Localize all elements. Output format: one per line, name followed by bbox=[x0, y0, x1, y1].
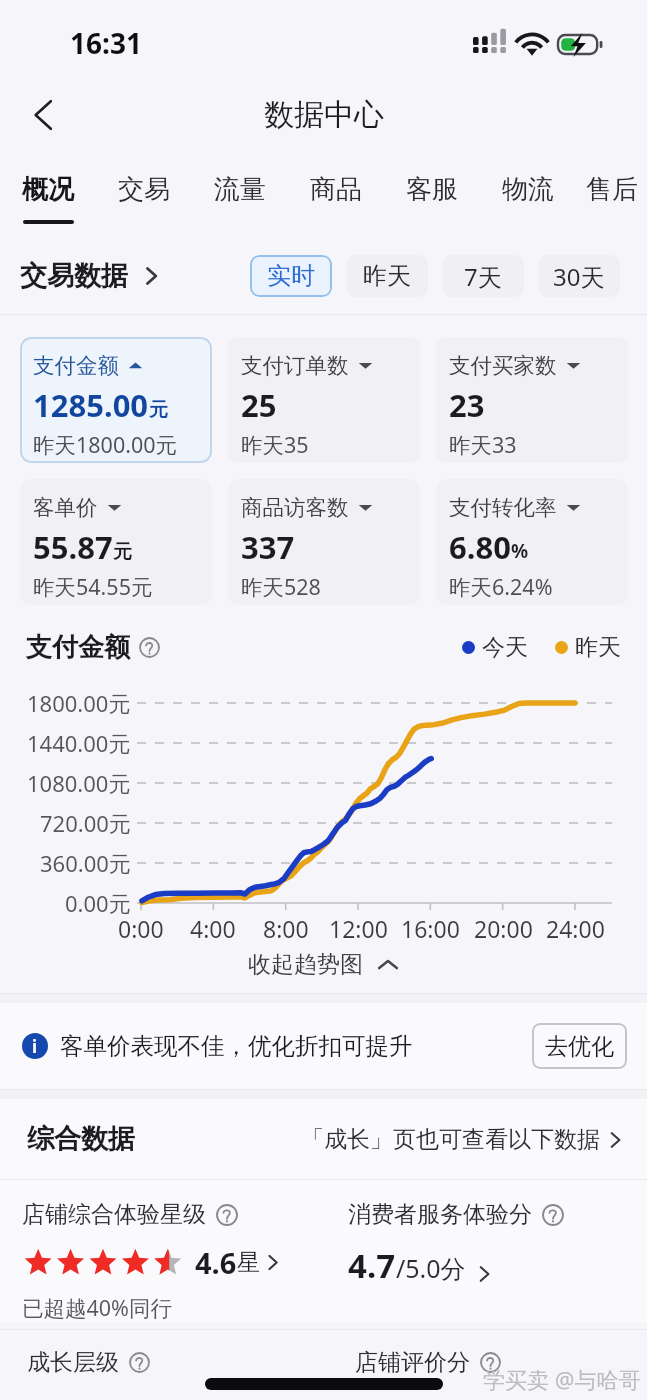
button[interactable]: 商品 bbox=[288, 144, 384, 226]
button[interactable]: 去优化 bbox=[532, 1023, 627, 1069]
button[interactable]: 收起趋势图 bbox=[248, 950, 399, 979]
staticText: 20:00 bbox=[474, 913, 533, 944]
staticText: 0.00元 bbox=[65, 888, 131, 918]
staticText: 昨天528 bbox=[241, 572, 321, 601]
button[interactable]: 7天 bbox=[442, 255, 524, 297]
staticText: 1440.00元 bbox=[27, 728, 131, 758]
staticText: 昨天1800.00元 bbox=[33, 430, 178, 459]
staticText: 720.00元 bbox=[40, 808, 131, 838]
staticText: 昨天 bbox=[575, 633, 621, 662]
staticText: 昨天6.24% bbox=[449, 572, 553, 601]
staticText: 昨天54.55元 bbox=[33, 572, 153, 601]
staticText: 商品访客数 bbox=[241, 494, 349, 521]
staticText: 流量 bbox=[214, 173, 266, 206]
button[interactable]: 客服 bbox=[384, 144, 480, 226]
staticText: 交易数据 bbox=[20, 259, 128, 293]
button[interactable]: 物流 bbox=[480, 144, 576, 226]
staticText: 综合数据 bbox=[27, 1122, 135, 1156]
staticText: 今天 bbox=[482, 633, 528, 662]
staticText: i bbox=[32, 1035, 38, 1058]
button[interactable]: 支付金额 bbox=[20, 337, 212, 463]
staticText: 4.6 bbox=[195, 1243, 237, 1282]
staticText: 客单价 bbox=[33, 494, 98, 521]
staticText: 1080.00元 bbox=[27, 768, 131, 798]
staticText: 店铺综合体验星级 bbox=[22, 1200, 206, 1229]
staticText: 支付买家数 bbox=[449, 352, 557, 379]
staticText: 店铺评价分 bbox=[355, 1348, 470, 1377]
button[interactable]: 实时 bbox=[250, 255, 332, 297]
button[interactable]: 交易数据 bbox=[20, 259, 162, 293]
staticText: 支付转化率 bbox=[449, 494, 557, 521]
staticText: 昨天35 bbox=[241, 430, 309, 459]
staticText: 支付金额 bbox=[26, 631, 130, 664]
staticText: 12:00 bbox=[329, 913, 388, 944]
staticText: 6.80 bbox=[449, 526, 511, 568]
staticText: 概况 bbox=[22, 173, 74, 206]
button[interactable]: 支付转化率 bbox=[436, 479, 628, 605]
button[interactable]: 售后 bbox=[576, 144, 647, 226]
staticText: 去优化 bbox=[545, 1032, 614, 1061]
staticText: 1800.00元 bbox=[27, 688, 131, 718]
staticText: 已超越40%同行 bbox=[22, 1293, 172, 1322]
button[interactable]: 概况 bbox=[0, 144, 96, 226]
staticText: 交易 bbox=[118, 173, 170, 206]
staticText: 成长层级 bbox=[27, 1348, 119, 1377]
staticText: 物流 bbox=[502, 173, 554, 206]
button[interactable]: 店铺综合体验星级 bbox=[0, 1200, 348, 1322]
staticText: 客单价表现不佳，优化折扣可提升 bbox=[60, 1031, 413, 1061]
button[interactable]: 交易 bbox=[96, 144, 192, 226]
staticText: 4:00 bbox=[190, 913, 236, 944]
staticText: 360.00元 bbox=[40, 848, 131, 878]
button[interactable]: 支付订单数 bbox=[228, 337, 420, 463]
staticText: 23 bbox=[449, 384, 485, 426]
staticText: 支付订单数 bbox=[241, 352, 349, 379]
staticText: 元 bbox=[149, 398, 168, 422]
staticText: 收起趋势图 bbox=[248, 950, 363, 979]
staticText: 学买卖 @与哈哥 bbox=[483, 1364, 641, 1394]
button[interactable]: 「成长」页也可查看以下数据 bbox=[301, 1125, 625, 1154]
staticText: 1285.00 bbox=[33, 384, 149, 426]
staticText: 元 bbox=[113, 540, 132, 564]
staticText: 0:00 bbox=[118, 913, 164, 944]
staticText: 昨天 bbox=[363, 261, 411, 291]
staticText: 星 bbox=[237, 1248, 260, 1277]
button[interactable]: 30天 bbox=[538, 255, 620, 297]
staticText: 昨天33 bbox=[449, 430, 517, 459]
staticText: 数据中心 bbox=[264, 96, 384, 134]
button[interactable]: 流量 bbox=[192, 144, 288, 226]
staticText: 337 bbox=[241, 526, 295, 568]
staticText: /5.0分 bbox=[396, 1251, 466, 1285]
button[interactable]: 商品访客数 bbox=[228, 479, 420, 605]
button[interactable]: Back bbox=[20, 88, 74, 142]
button[interactable]: 支付买家数 bbox=[436, 337, 628, 463]
button[interactable]: 消费者服务体验分 bbox=[348, 1200, 647, 1288]
staticText: 30天 bbox=[553, 260, 605, 293]
button[interactable]: 客单价 bbox=[20, 479, 212, 605]
staticText: 8:00 bbox=[263, 913, 309, 944]
staticText: 7天 bbox=[464, 260, 502, 293]
staticText: 24:00 bbox=[546, 913, 605, 944]
button[interactable]: 昨天 bbox=[346, 255, 428, 297]
staticText: 「成长」页也可查看以下数据 bbox=[301, 1125, 600, 1154]
staticText: % bbox=[511, 538, 529, 564]
staticText: 客服 bbox=[406, 173, 458, 206]
staticText: 商品 bbox=[310, 173, 362, 206]
staticText: 16:31 bbox=[70, 24, 142, 62]
staticText: 4.7 bbox=[348, 1243, 396, 1288]
staticText: 16:00 bbox=[401, 913, 460, 944]
staticText: 实时 bbox=[267, 261, 315, 291]
staticText: 支付金额 bbox=[33, 352, 119, 379]
staticText: 消费者服务体验分 bbox=[348, 1200, 532, 1229]
staticText: 售后 bbox=[586, 173, 638, 206]
staticText: 25 bbox=[241, 384, 277, 426]
staticText: 55.87 bbox=[33, 526, 113, 568]
